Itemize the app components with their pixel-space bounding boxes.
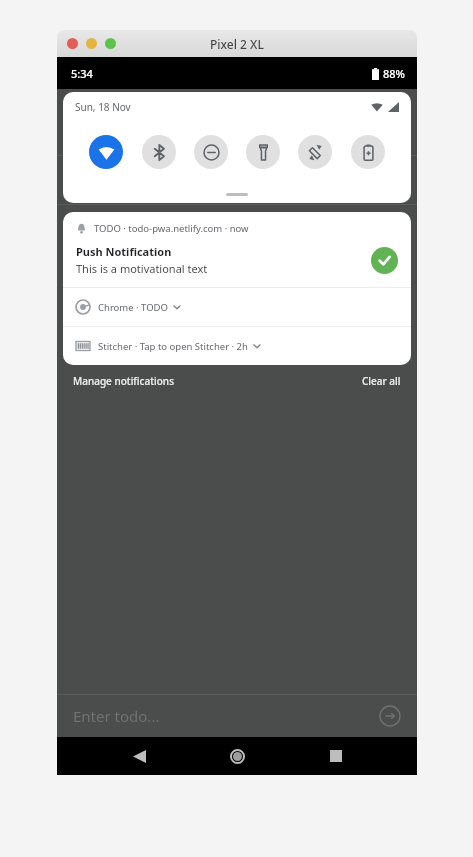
button[interactable]: Chrome · TODO	[63, 288, 411, 326]
button[interactable]: Toggle done	[71, 120, 94, 143]
staticText: Pixel 2 XL	[210, 36, 264, 52]
button[interactable]: Bluetooth	[142, 135, 176, 169]
button[interactable]: TODO · todo-pwa.netlify.com · now	[63, 212, 411, 287]
staticText: Push Notification	[76, 244, 172, 259]
staticText: Chrome · TODO	[98, 301, 168, 314]
button[interactable]: Stitcher · Tap to open Stitcher · 2h	[63, 327, 411, 365]
staticText: Stitcher · Tap to open Stitcher · 2h	[98, 340, 248, 353]
button[interactable]: Manage notifications	[73, 374, 174, 388]
button[interactable]: Enter todo...	[57, 695, 417, 737]
button[interactable]: Flashlight	[246, 135, 280, 169]
staticText: Manage notifications	[73, 374, 174, 388]
button[interactable]: Auto rotate	[298, 135, 332, 169]
button[interactable]: Do not disturb	[194, 135, 228, 169]
button[interactable]: Wi-Fi	[89, 135, 123, 169]
staticText: TODO · todo-pwa.netlify.com · now	[94, 222, 249, 235]
button[interactable]: Toggle done	[57, 107, 417, 155]
button[interactable]: Toggle done	[57, 156, 417, 204]
button[interactable]: Add todo	[379, 705, 401, 727]
button[interactable]: Home	[220, 739, 254, 773]
staticText: 5:34	[71, 66, 93, 81]
button[interactable]: Battery saver	[351, 135, 385, 169]
button[interactable]: Recents	[319, 739, 353, 773]
staticText: attach service worker with caching	[112, 121, 342, 141]
staticText: Enter todo...	[73, 706, 379, 726]
staticText: 88%	[383, 66, 405, 81]
staticText: Clear all	[362, 374, 401, 388]
staticText: Sun, 18 Nov	[75, 100, 131, 114]
staticText: This is a motivational text	[76, 261, 208, 276]
button[interactable]: Clear all	[362, 374, 401, 388]
button[interactable]: Back	[122, 739, 156, 773]
